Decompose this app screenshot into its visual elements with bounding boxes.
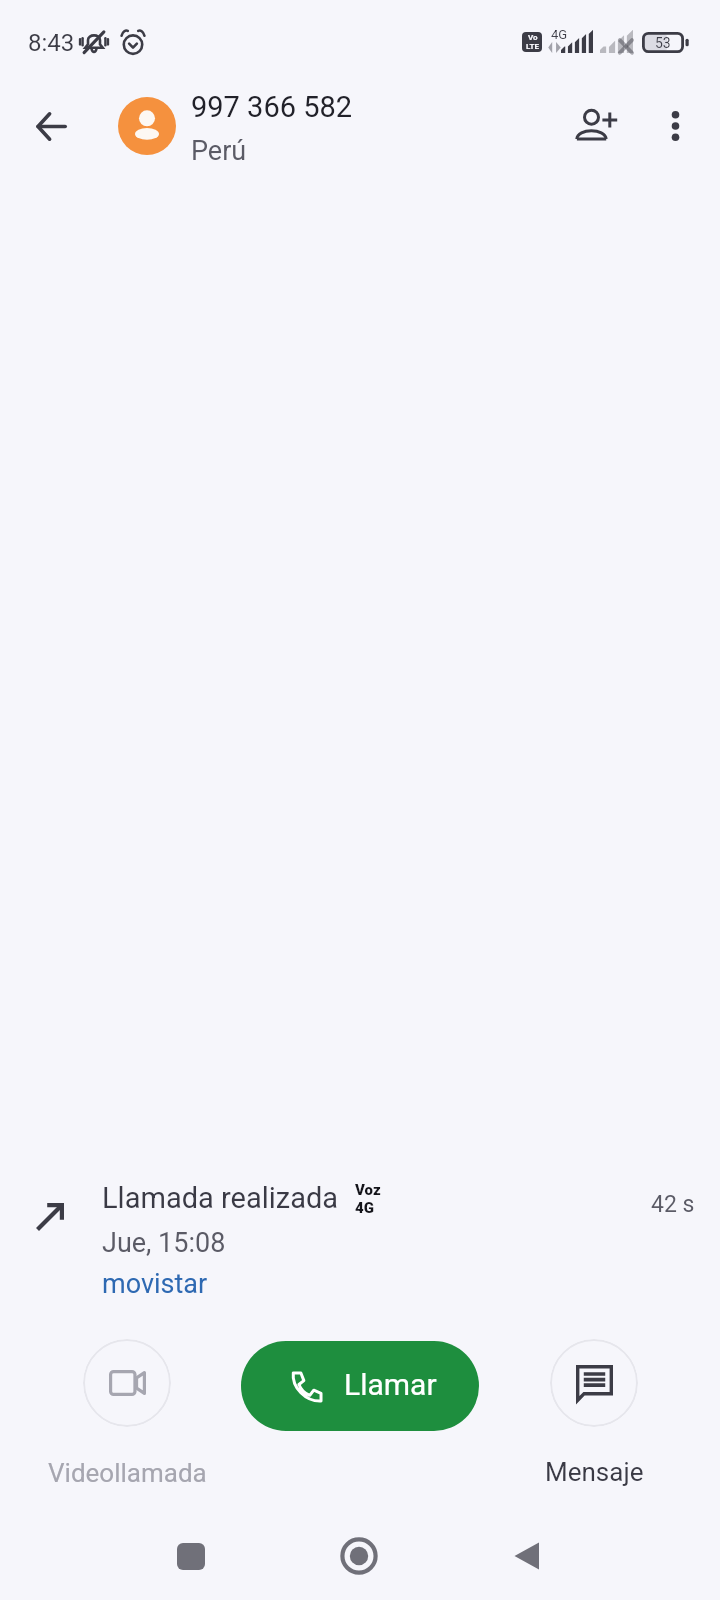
staticText: 4G: [551, 27, 568, 42]
button[interactable]: Home: [315, 1512, 403, 1600]
staticText: Voz: [355, 1181, 381, 1199]
staticText: 53: [655, 35, 671, 51]
button[interactable]: Back: [482, 1512, 570, 1600]
staticText: Jue, 15:08: [102, 1227, 226, 1259]
staticText: Vo: [528, 33, 538, 42]
button[interactable]: Recents: [147, 1512, 235, 1600]
button[interactable]: Llamada realizada: [0, 1172, 720, 1312]
other: Message: [550, 1339, 638, 1427]
button[interactable]: Llamar: [241, 1341, 479, 1431]
button[interactable]: Add contact: [566, 94, 628, 156]
staticText: 4G: [355, 1199, 374, 1217]
staticText: 8:43: [28, 29, 75, 57]
staticText: Llamada realizada: [102, 1181, 339, 1215]
staticText: Videollamada: [48, 1458, 207, 1488]
staticText: movistar: [102, 1268, 208, 1300]
button[interactable]: Back: [20, 95, 83, 158]
staticText: 997 366 582: [191, 90, 353, 124]
button[interactable]: Message: [509, 1339, 679, 1487]
staticText: Llamar: [344, 1367, 437, 1402]
button[interactable]: More options: [647, 97, 704, 154]
button[interactable]: Video call: [42, 1339, 212, 1488]
staticText: 42 s: [651, 1191, 695, 1218]
staticText: Perú: [191, 135, 247, 167]
staticText: LTE: [526, 42, 539, 51]
staticText: Mensaje: [545, 1457, 644, 1487]
other: Video call: [83, 1339, 171, 1427]
